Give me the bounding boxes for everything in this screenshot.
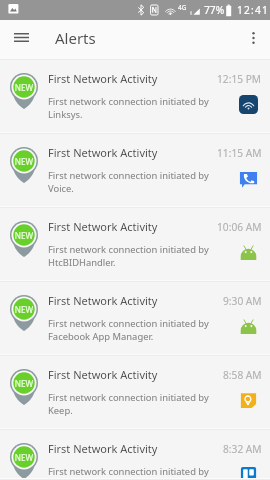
staticText: NEW [10, 230, 38, 241]
staticText: NEW [10, 378, 38, 389]
staticText: 10:06 AM [217, 220, 262, 234]
button[interactable]: More options [239, 23, 268, 52]
staticText: First network connection initiated by Ht… [48, 243, 220, 269]
staticText: First network connection initiated by Fa… [48, 317, 220, 343]
staticText: First Network Activity [48, 367, 158, 382]
staticText: First Network Activity [48, 145, 158, 160]
staticText: NEW [10, 304, 38, 315]
staticText: First network connection initiated by Vo… [48, 169, 220, 195]
staticText: NEW [10, 156, 38, 167]
staticText: First Network Activity [48, 293, 158, 308]
button[interactable]: Open navigation menu [7, 23, 36, 52]
staticText: 12:15 PM [217, 72, 262, 86]
staticText: First network connection initiated by Tr… [48, 465, 220, 480]
staticText: 8:58 AM [223, 368, 262, 382]
staticText: First Network Activity [48, 219, 158, 234]
staticText: First network connection initiated by Ke… [48, 391, 220, 417]
staticText: 9:30 AM [223, 294, 262, 308]
button[interactable]: NEW [0, 282, 270, 356]
button[interactable]: NEW [0, 60, 270, 134]
staticText: NEW [10, 452, 38, 463]
staticText: First network connection initiated by Li… [48, 95, 220, 121]
button[interactable]: NEW [0, 208, 270, 282]
staticText: 77% [204, 3, 225, 17]
staticText: 4G [178, 3, 187, 12]
staticText: 8:32 AM [223, 442, 262, 456]
button[interactable]: NEW [0, 430, 270, 480]
staticText: 11:15 AM [217, 146, 262, 160]
button[interactable]: NEW [0, 134, 270, 208]
staticText: First Network Activity [48, 441, 158, 456]
staticText: Alerts [55, 28, 96, 48]
staticText: 12:41 [237, 3, 270, 17]
staticText: NEW [10, 82, 38, 93]
button[interactable]: NEW [0, 356, 270, 430]
staticText: First Network Activity [48, 71, 158, 86]
